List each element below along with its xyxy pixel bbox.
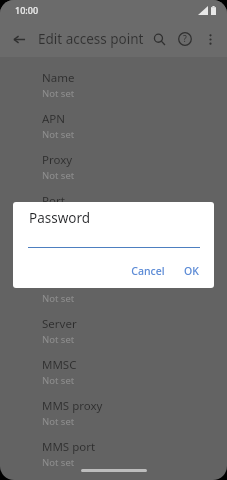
staticText: Not set <box>42 415 75 428</box>
staticText: Not set <box>42 128 75 141</box>
button[interactable]: MMS port <box>0 435 227 476</box>
staticText: Not set <box>42 292 75 305</box>
staticText: MMS proxy <box>42 398 103 414</box>
staticText: ? <box>183 33 187 45</box>
staticText: OK <box>184 264 199 278</box>
staticText: Proxy <box>42 152 73 168</box>
staticText: APN <box>42 111 66 127</box>
staticText: MMSC <box>42 357 77 373</box>
button[interactable]: Server <box>0 312 227 353</box>
staticText: Not set <box>42 210 75 223</box>
staticText: Edit access point <box>38 30 146 48</box>
button[interactable]: OK <box>177 260 206 282</box>
button[interactable]: Proxy <box>0 148 227 189</box>
button[interactable]: APN <box>0 107 227 148</box>
staticText: MMS port <box>42 439 96 455</box>
staticText: Port <box>42 193 65 209</box>
staticText: Username <box>42 234 98 250</box>
button[interactable]: MMS proxy <box>0 394 227 435</box>
staticText: Not set <box>42 169 75 182</box>
button[interactable]: Search <box>146 26 172 52</box>
staticText: Password <box>29 209 91 227</box>
staticText: 10:00 <box>15 4 39 16</box>
button[interactable]: Help <box>172 26 198 52</box>
staticText: Not set <box>42 87 75 100</box>
staticText: Server <box>42 316 77 332</box>
staticText: Not set <box>42 333 75 346</box>
staticText: Name <box>42 70 75 86</box>
button[interactable]: Username <box>0 230 227 271</box>
button[interactable]: More options <box>198 27 222 51</box>
staticText: Not set <box>42 374 75 387</box>
button[interactable]: Back <box>6 26 32 52</box>
staticText: Password <box>42 275 95 291</box>
button[interactable]: Name <box>0 66 227 107</box>
button[interactable]: MMSC <box>0 353 227 394</box>
button[interactable]: Password <box>0 271 227 312</box>
button[interactable]: Port <box>0 189 227 230</box>
button[interactable]: MCC <box>0 476 227 480</box>
staticText: Cancel <box>131 264 165 278</box>
button[interactable]: Cancel <box>124 260 172 282</box>
staticText: Not set <box>42 456 75 469</box>
